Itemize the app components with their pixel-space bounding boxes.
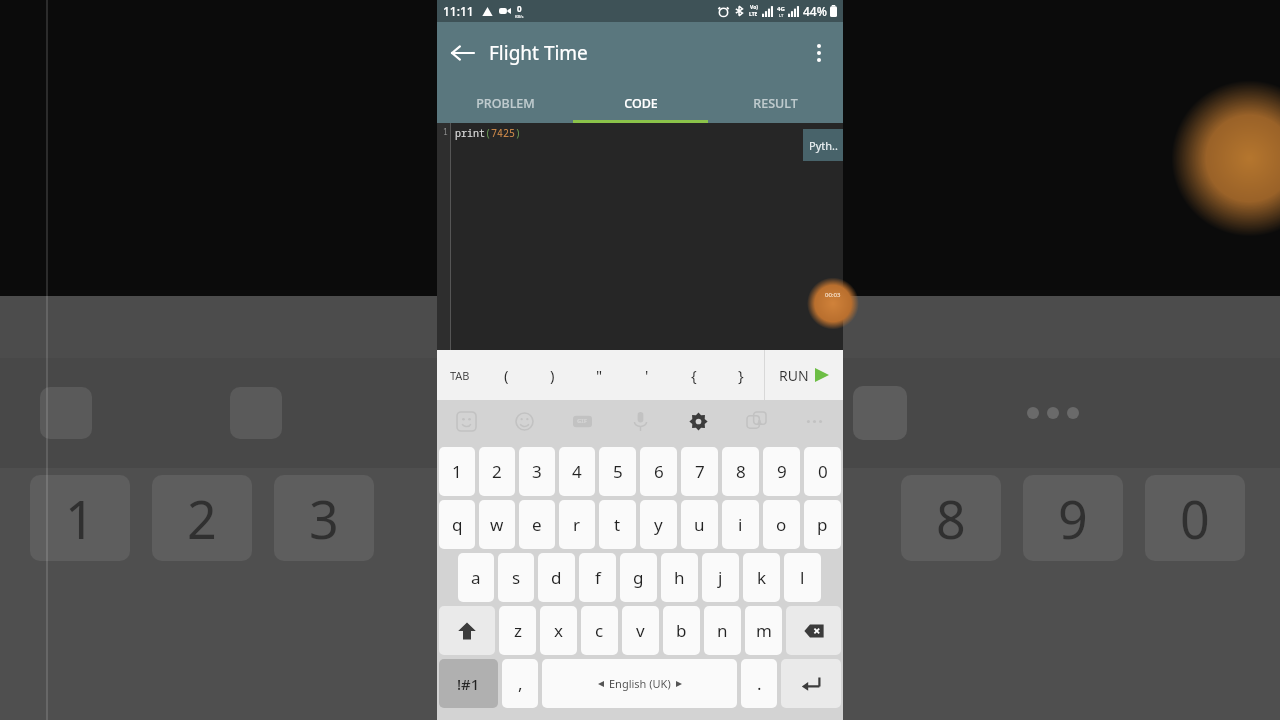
staticText: , <box>518 672 523 695</box>
button[interactable]: " <box>576 350 623 400</box>
staticText: ) <box>550 365 555 385</box>
staticText: 7 <box>695 460 705 483</box>
button[interactable]: z <box>499 606 536 655</box>
button[interactable]: } <box>717 350 764 400</box>
button[interactable]: RESULT <box>708 84 843 123</box>
staticText: k <box>757 566 767 589</box>
staticText: i <box>738 513 743 536</box>
button[interactable]: Back <box>437 27 489 79</box>
button[interactable]: 4 <box>559 447 595 496</box>
button[interactable]: Stickers <box>437 400 495 442</box>
button[interactable]: English (UK) <box>542 659 737 708</box>
button[interactable]: w <box>479 500 515 549</box>
staticText: 2 <box>492 460 502 483</box>
staticText: ( <box>485 126 491 140</box>
staticText: a <box>471 566 481 589</box>
button[interactable]: ( <box>483 350 529 400</box>
button[interactable]: Backspace <box>786 606 841 655</box>
button[interactable]: CODE <box>573 84 708 123</box>
staticText: 9 <box>777 460 787 483</box>
button[interactable]: More options <box>795 29 843 77</box>
button[interactable]: 9 <box>763 447 800 496</box>
staticText: !#1 <box>457 674 480 694</box>
button[interactable]: GIF <box>553 400 611 442</box>
button[interactable]: h <box>661 553 698 602</box>
button[interactable]: m <box>745 606 782 655</box>
button[interactable]: s <box>498 553 534 602</box>
button[interactable]: g <box>620 553 657 602</box>
button[interactable]: . <box>741 659 777 708</box>
button[interactable]: , <box>502 659 538 708</box>
button[interactable]: n <box>704 606 741 655</box>
button[interactable]: 8 <box>722 447 759 496</box>
staticText: ) <box>515 126 521 140</box>
button[interactable]: a <box>458 553 494 602</box>
staticText: 1 <box>443 126 448 137</box>
staticText: g <box>633 566 644 589</box>
button[interactable]: TAB <box>437 350 483 400</box>
button[interactable]: x <box>540 606 577 655</box>
staticText: Flight Time <box>489 40 588 66</box>
staticText: Vo) <box>750 4 758 11</box>
staticText: { <box>691 365 697 385</box>
button[interactable]: j <box>702 553 739 602</box>
button[interactable]: Shift <box>439 606 495 655</box>
button[interactable]: q <box>439 500 475 549</box>
staticText: 0 <box>1180 483 1210 554</box>
button[interactable]: Pyth.. <box>803 129 843 161</box>
button[interactable]: 3 <box>519 447 555 496</box>
staticText: } <box>738 365 744 385</box>
button[interactable]: !#1 <box>439 659 498 708</box>
button[interactable]: Translate <box>727 400 785 442</box>
staticText: 8 <box>736 460 746 483</box>
staticText: 0 <box>517 3 522 14</box>
staticText: u <box>694 513 705 536</box>
button[interactable]: ) <box>529 350 576 400</box>
staticText: RESULT <box>753 95 798 112</box>
staticText: 2 <box>187 483 217 554</box>
button[interactable]: v <box>622 606 659 655</box>
button[interactable]: ' <box>623 350 670 400</box>
button[interactable]: Emoji <box>495 400 553 442</box>
staticText: q <box>452 513 463 536</box>
button[interactable]: l <box>784 553 821 602</box>
staticText: h <box>674 566 685 589</box>
button[interactable]: Enter <box>781 659 841 708</box>
button[interactable]: k <box>743 553 780 602</box>
button[interactable]: u <box>681 500 718 549</box>
button[interactable]: PROBLEM <box>437 84 573 123</box>
button[interactable]: Keyboard settings <box>669 400 727 442</box>
staticText: 5 <box>613 460 623 483</box>
button[interactable]: r <box>559 500 595 549</box>
button[interactable]: b <box>663 606 700 655</box>
button[interactable]: t <box>599 500 636 549</box>
button[interactable]: 7 <box>681 447 718 496</box>
staticText: n <box>717 619 728 642</box>
staticText: 7425 <box>491 126 515 140</box>
staticText: c <box>595 619 604 642</box>
staticText: PROBLEM <box>476 95 535 112</box>
staticText: GIF <box>577 417 587 425</box>
button[interactable]: y <box>640 500 677 549</box>
button[interactable]: 6 <box>640 447 677 496</box>
button[interactable]: o <box>763 500 800 549</box>
button[interactable]: { <box>670 350 717 400</box>
staticText: LT <box>779 13 784 18</box>
button[interactable]: d <box>538 553 575 602</box>
staticText: " <box>596 365 603 385</box>
staticText: 4 <box>572 460 582 483</box>
button[interactable]: f <box>579 553 616 602</box>
button[interactable]: c <box>581 606 618 655</box>
button[interactable]: p <box>804 500 841 549</box>
button[interactable]: e <box>519 500 555 549</box>
staticText: s <box>512 566 521 589</box>
button[interactable]: i <box>722 500 759 549</box>
button[interactable]: 2 <box>479 447 515 496</box>
button[interactable]: 0 <box>804 447 841 496</box>
button[interactable]: 1 <box>439 447 475 496</box>
staticText: KB/s <box>515 14 524 19</box>
button[interactable]: 5 <box>599 447 636 496</box>
button[interactable]: RUN <box>765 350 843 400</box>
